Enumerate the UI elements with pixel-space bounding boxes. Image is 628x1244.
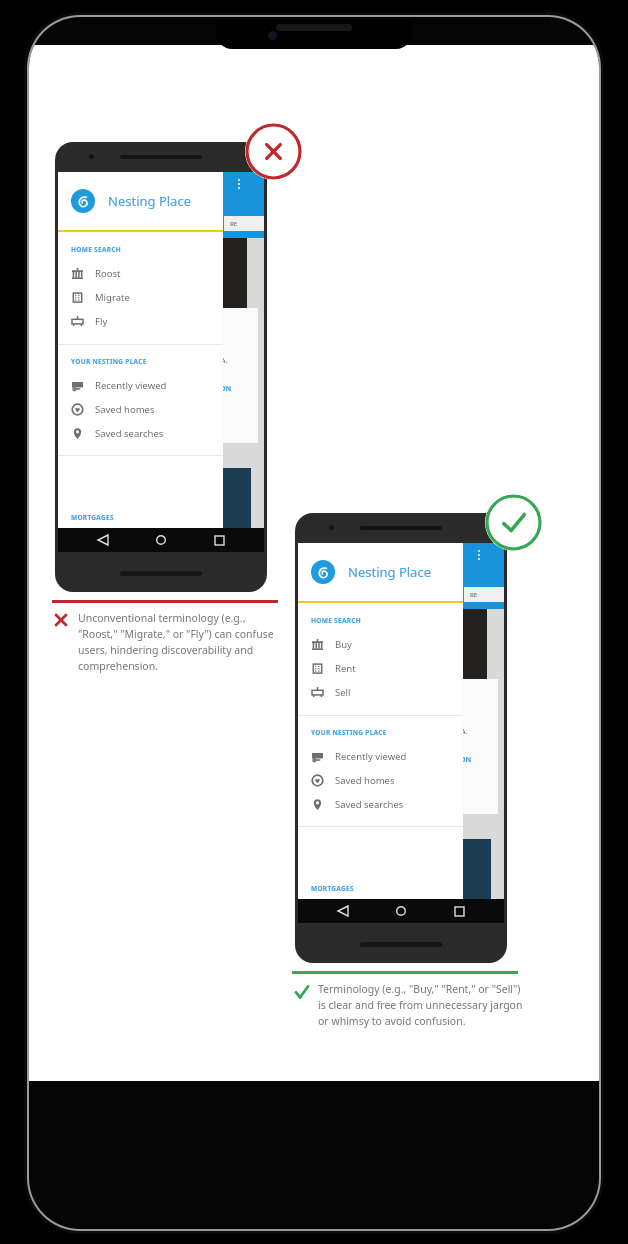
button[interactable]: Roost: [58, 261, 223, 285]
button[interactable]: Recently viewed: [58, 373, 223, 397]
staticText: MORTGAGES: [71, 513, 114, 522]
staticText: HOME SEARCH: [71, 245, 122, 254]
staticText: Sell: [335, 686, 351, 699]
button[interactable]: Saved homes: [58, 397, 223, 421]
button[interactable]: Fly: [58, 309, 223, 333]
button[interactable]: Sell: [298, 680, 463, 704]
staticText: Nesting Place: [108, 192, 191, 210]
staticText: Saved searches: [335, 798, 404, 811]
button[interactable]: Saved homes: [298, 768, 463, 792]
button[interactable]: Back: [330, 899, 356, 923]
staticText: YOUR NESTING PLACE: [71, 357, 147, 366]
button[interactable]: Recents: [206, 528, 232, 552]
staticText: A.: [221, 356, 228, 366]
staticText: RE: [230, 220, 238, 228]
button[interactable]: Migrate: [58, 285, 223, 309]
button[interactable]: Rent: [298, 656, 463, 680]
staticText: YOUR NESTING PLACE: [311, 728, 387, 737]
staticText: MORTGAGES: [311, 884, 354, 893]
staticText: Saved searches: [95, 427, 164, 440]
button[interactable]: Incorrect example: [245, 123, 302, 180]
button[interactable]: Back: [90, 528, 116, 552]
staticText: Recently viewed: [335, 750, 407, 763]
staticText: Recently viewed: [95, 379, 167, 392]
staticText: Migrate: [95, 291, 130, 304]
button[interactable]: Buy: [298, 632, 463, 656]
staticText: A.: [461, 727, 468, 737]
staticText: Buy: [335, 638, 352, 651]
button[interactable]: Home: [148, 528, 174, 552]
staticText: Unconventional terminology (e.g., "Roost…: [78, 611, 287, 673]
staticText: RE: [470, 591, 478, 599]
staticText: Nesting Place: [348, 563, 431, 581]
staticText: Saved homes: [335, 774, 395, 787]
staticText: Roost: [95, 267, 121, 280]
staticText: ON: [220, 384, 232, 394]
button[interactable]: Saved searches: [298, 792, 463, 816]
staticText: ON: [460, 755, 472, 765]
button[interactable]: Home: [388, 899, 414, 923]
button[interactable]: Recently viewed: [298, 744, 463, 768]
staticText: HOME SEARCH: [311, 616, 362, 625]
button[interactable]: Recents: [446, 899, 472, 923]
button[interactable]: Correct example: [485, 494, 542, 551]
staticText: Terminology (e.g., "Buy," "Rent," or "Se…: [318, 982, 527, 1028]
staticText: Saved homes: [95, 403, 155, 416]
button[interactable]: Saved searches: [58, 421, 223, 445]
staticText: Rent: [335, 662, 356, 675]
staticText: Fly: [95, 315, 108, 328]
